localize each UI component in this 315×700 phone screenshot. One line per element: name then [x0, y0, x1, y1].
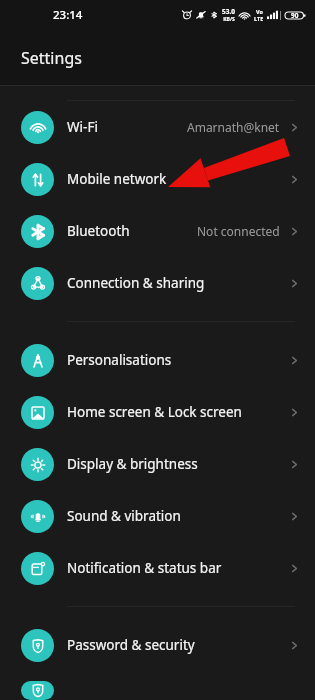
staticText: Personalisations — [67, 351, 172, 369]
staticText: 23:14 — [53, 7, 83, 23]
staticText: Home screen & Lock screen — [67, 403, 242, 421]
staticText: Bluetooth — [67, 222, 130, 240]
staticText: Display & brightness — [67, 455, 198, 473]
staticText: Not connected — [197, 223, 280, 239]
staticText: Settings — [21, 47, 82, 69]
staticText: Wi-Fi — [67, 118, 98, 136]
button[interactable] — [0, 681, 315, 700]
staticText: Notification & status bar — [67, 559, 222, 577]
staticText: Password & security — [67, 636, 195, 654]
staticText: Sound & vibration — [67, 507, 181, 525]
staticText: Vo — [256, 8, 263, 15]
button[interactable]: Notification & status bar — [0, 542, 315, 594]
staticText: Mobile network — [67, 170, 167, 188]
button[interactable]: Password & security — [0, 619, 315, 671]
button[interactable]: Home screen & Lock screen — [0, 386, 315, 438]
staticText: 90 — [291, 11, 299, 20]
button[interactable]: Mobile network — [0, 153, 315, 205]
button[interactable]: Personalisations — [0, 334, 315, 386]
staticText: LTE — [254, 15, 264, 22]
staticText: 53.0 — [222, 7, 235, 16]
button[interactable]: Connection & sharing — [0, 257, 315, 309]
staticText: Connection & sharing — [67, 274, 205, 292]
button[interactable]: Wi-Fi — [0, 101, 315, 153]
staticText: KB/S — [223, 16, 235, 23]
button[interactable]: Display & brightness — [0, 438, 315, 490]
button[interactable]: Sound & vibration — [0, 490, 315, 542]
button[interactable]: Bluetooth — [0, 205, 315, 257]
staticText: Amarnath@knet — [187, 119, 280, 135]
